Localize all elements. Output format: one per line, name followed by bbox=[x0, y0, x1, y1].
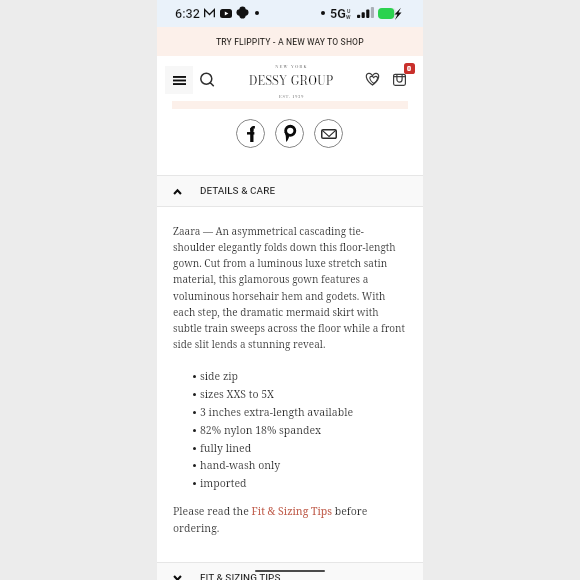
staticText: W bbox=[346, 14, 351, 20]
staticText: each step, the dramatic mermaid skirt wi… bbox=[173, 305, 379, 319]
staticText: Please read the Fit & Sizing Tips before bbox=[173, 504, 368, 518]
staticText: hand-wash only bbox=[200, 458, 281, 472]
staticText: NEW YORK bbox=[275, 63, 308, 70]
staticText: side slit lends a stunning reveal. bbox=[173, 337, 326, 351]
staticText: FIT & SIZING TIPS bbox=[200, 572, 281, 580]
staticText: U bbox=[347, 8, 351, 14]
staticText: gown. Cut from a luminous luxe stretch s… bbox=[173, 256, 388, 270]
staticText: material, this glamorous gown features a bbox=[173, 272, 369, 286]
staticText: TRY FLIPPITY - A NEW WAY TO SHOP bbox=[216, 37, 364, 47]
button[interactable]: Facebook bbox=[236, 119, 265, 148]
staticText: subtle train sweeps across the floor whi… bbox=[173, 321, 406, 335]
staticText: voluminous horsehair hem and godets. Wit… bbox=[173, 289, 386, 303]
staticText: sizes XXS to 5X bbox=[200, 387, 275, 401]
staticText: imported bbox=[200, 476, 247, 490]
staticText: DESSY GROUP bbox=[249, 72, 334, 90]
button[interactable]: Search bbox=[193, 65, 220, 92]
staticText: ordering. bbox=[173, 521, 220, 535]
button[interactable]: Email bbox=[314, 119, 343, 148]
staticText: 0 bbox=[407, 65, 412, 73]
staticText: DETAILS & CARE bbox=[200, 185, 276, 197]
staticText: side zip bbox=[200, 369, 239, 383]
staticText: 5G bbox=[330, 6, 346, 21]
staticText: 6:32 bbox=[175, 6, 200, 21]
staticText: EST. 1939 bbox=[279, 93, 305, 100]
button[interactable]: Shopping bag bbox=[386, 59, 416, 89]
staticText: Zaara — An asymmetrical cascading tie- bbox=[173, 224, 364, 238]
button[interactable]: Menu bbox=[165, 66, 193, 94]
staticText: shoulder elegantly folds down this floor… bbox=[173, 240, 396, 254]
staticText: 82% nylon 18% spandex bbox=[200, 423, 322, 437]
button[interactable]: FIT & SIZING TIPS bbox=[157, 563, 423, 580]
button[interactable]: Pinterest bbox=[275, 119, 304, 148]
button[interactable]: DETAILS & CARE bbox=[157, 176, 423, 206]
button[interactable]: TRY FLIPPITY - A NEW WAY TO SHOP bbox=[157, 27, 423, 56]
button[interactable]: Wishlist bbox=[360, 66, 385, 91]
staticText: fully lined bbox=[200, 441, 252, 455]
staticText: 3 inches extra-length available bbox=[200, 405, 354, 419]
